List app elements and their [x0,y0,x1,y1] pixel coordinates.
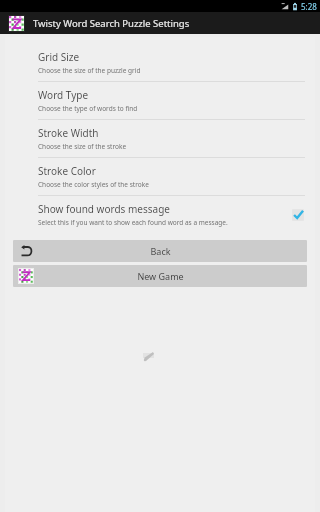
staticText: Word Type [38,88,89,102]
staticText: Choose the type of words to find [38,104,138,113]
other: Back [18,243,34,259]
staticText: Choose the size of the stroke [38,142,127,151]
staticText: Grid Size [38,50,80,64]
other: Show found words message checkbox [291,208,305,222]
staticText: Show found words message [38,202,170,216]
staticText: 5:28 [301,1,317,12]
staticText: Choose the color styles of the stroke [38,180,149,189]
button[interactable]: New Game [13,265,307,287]
staticText: Back [150,245,171,257]
button[interactable]: Back [13,240,307,262]
staticText: Stroke Width [38,126,99,140]
button[interactable]: Stroke Color [5,158,315,195]
button[interactable]: Grid Size [5,44,315,81]
button[interactable]: Stroke Width [5,120,315,157]
staticText: Stroke Color [38,164,96,178]
staticText: New Game [137,270,184,282]
button[interactable]: Word Type [5,82,315,119]
button[interactable]: Show found words message [5,196,315,233]
staticText: Twisty Word Search Puzzle Settings [33,17,190,30]
staticText: Choose the size of the puzzle grid [38,66,141,75]
staticText: Select this if you want to show each fou… [38,218,228,227]
